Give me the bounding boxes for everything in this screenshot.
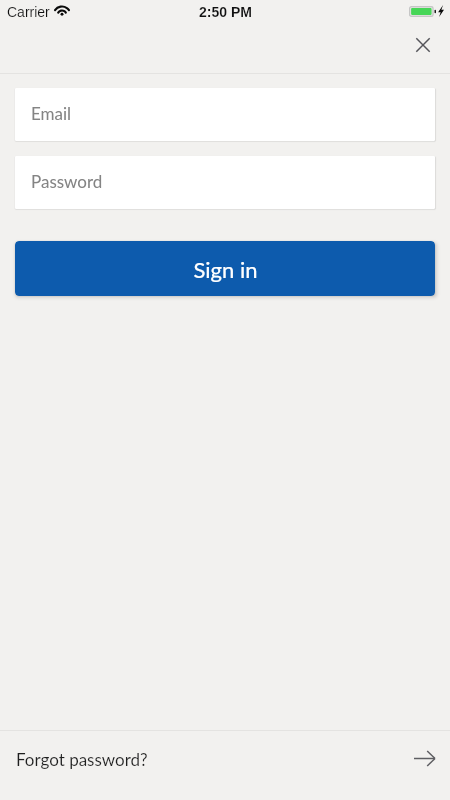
staticText: 2:50 PM bbox=[199, 4, 252, 20]
staticText: Sign in bbox=[193, 256, 258, 282]
staticText: Email bbox=[31, 103, 72, 123]
button[interactable]: Forgot password? bbox=[0, 731, 450, 786]
button[interactable]: Email bbox=[15, 88, 435, 141]
button[interactable]: Password bbox=[15, 156, 435, 209]
button[interactable]: Close bbox=[401, 23, 445, 67]
staticText: Forgot password? bbox=[16, 749, 148, 769]
button[interactable]: Sign in bbox=[15, 241, 435, 296]
staticText: Password bbox=[31, 171, 103, 191]
button[interactable]: Continue bbox=[404, 739, 444, 779]
staticText: Carrier bbox=[7, 4, 50, 20]
